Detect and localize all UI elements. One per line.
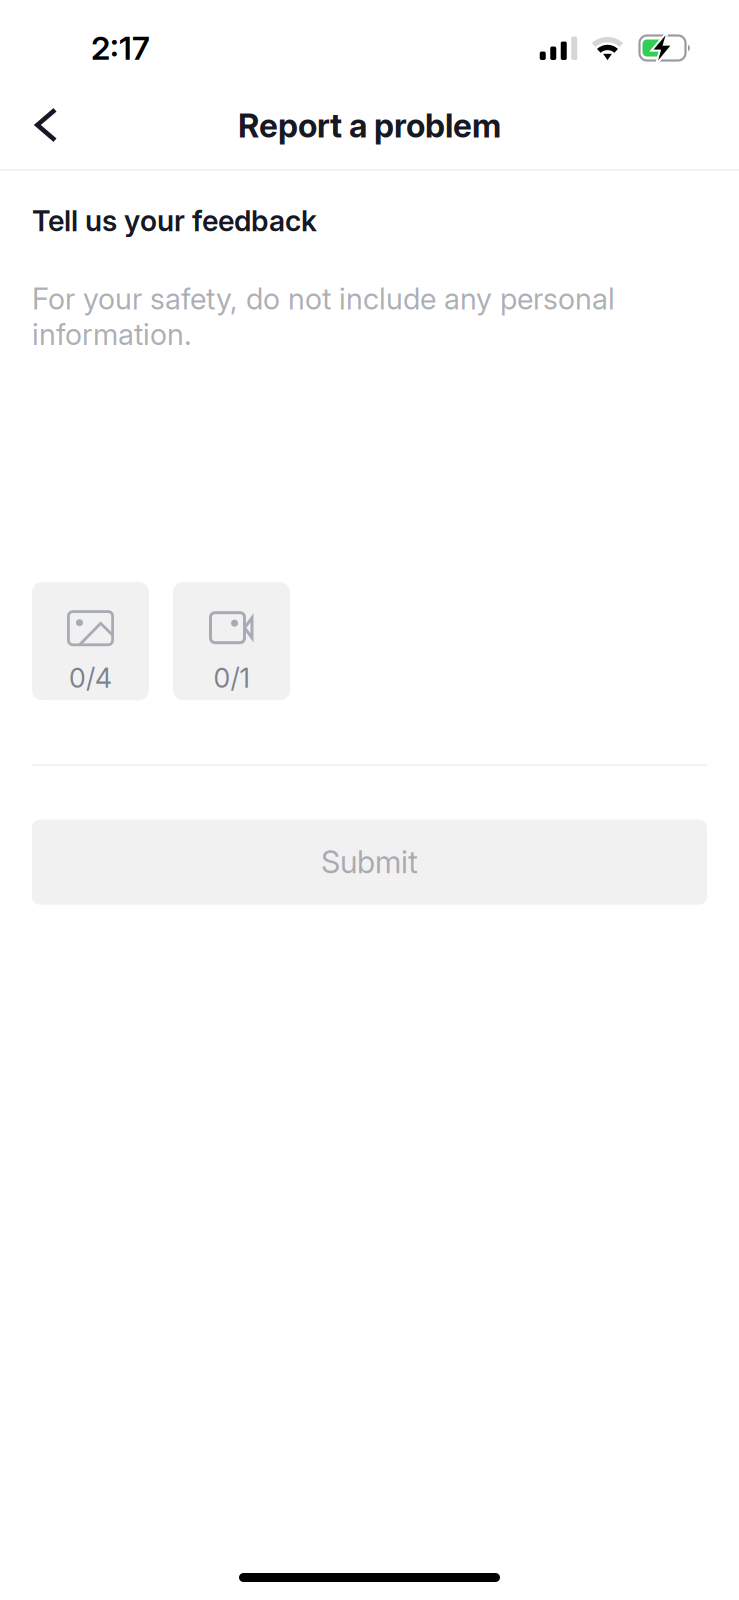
- staticText: Tell us your feedback: [32, 203, 317, 238]
- button[interactable]: 0/4: [32, 582, 149, 700]
- button[interactable]: 0/1: [173, 582, 290, 700]
- staticText: Report a problem: [238, 106, 501, 145]
- staticText: 0/4: [69, 662, 112, 694]
- staticText: 0/1: [213, 662, 249, 694]
- staticText: For your safety, do not include any pers…: [32, 281, 615, 352]
- staticText: 2:17: [91, 29, 150, 67]
- staticText: Submit: [321, 844, 418, 881]
- button[interactable]: Back: [14, 93, 78, 157]
- button[interactable]: Submit: [32, 820, 707, 905]
